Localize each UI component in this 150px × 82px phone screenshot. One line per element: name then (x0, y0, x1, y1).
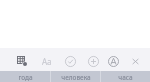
button[interactable]: Checklist (60, 51, 81, 72)
staticText: часа (118, 73, 133, 82)
staticText: года (18, 73, 33, 82)
staticText: Aa (42, 56, 52, 67)
button[interactable]: Close keyboard (125, 51, 146, 72)
button[interactable]: Insert table (11, 50, 32, 71)
button[interactable]: часа (101, 71, 150, 82)
button[interactable]: года (0, 71, 50, 82)
button[interactable]: человека (51, 71, 100, 82)
button[interactable]: Draw (103, 51, 124, 72)
button[interactable]: Text formatting (36, 51, 57, 72)
staticText: человека (61, 73, 91, 82)
button[interactable]: Insert (83, 51, 104, 72)
